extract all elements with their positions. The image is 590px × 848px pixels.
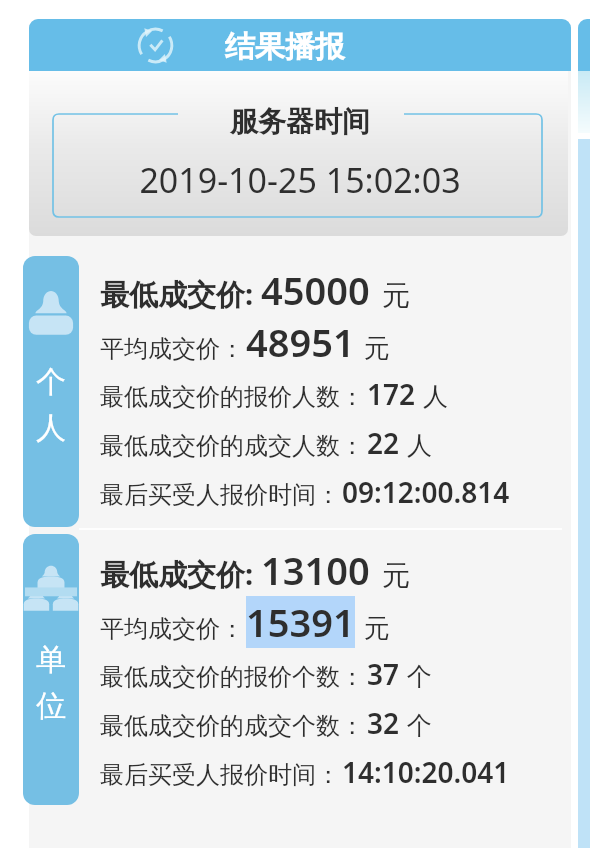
staticText: 人 <box>407 430 432 461</box>
staticText: 32 <box>367 704 400 742</box>
staticText: 元 <box>364 612 390 645</box>
other: Refresh <box>134 24 177 67</box>
staticText: 48951 <box>246 316 355 368</box>
staticText: 元 <box>382 558 410 593</box>
staticText: 14:10:20.041 <box>342 753 510 791</box>
staticText: 最低成交价的报价人数： <box>100 382 364 412</box>
staticText: 平均成交价： <box>100 334 244 364</box>
button[interactable]: 单 <box>23 534 79 805</box>
staticText: 最低成交价的报价个数： <box>100 662 364 692</box>
staticText: 人 <box>423 381 448 412</box>
staticText: 172 <box>367 375 416 413</box>
staticText: 结果播报 <box>225 28 345 66</box>
staticText: 平均成交价： <box>100 614 244 644</box>
staticText: 位 <box>36 687 66 725</box>
staticText: 最低成交价: <box>100 274 254 314</box>
staticText: 09:12:00.814 <box>342 473 510 511</box>
staticText: 37 <box>367 655 400 693</box>
staticText: 最低成交价的成交个数： <box>100 711 364 741</box>
staticText: 最低成交价的成交人数： <box>100 431 364 461</box>
staticText: 45000 <box>261 264 370 316</box>
staticText: 人 <box>36 409 66 447</box>
button[interactable]: 个 <box>23 256 79 527</box>
staticText: 15391 <box>246 596 355 648</box>
button[interactable]: Refresh <box>29 19 571 71</box>
staticText: 元 <box>364 332 390 365</box>
staticText: 最后买受人报价时间： <box>100 760 340 790</box>
staticText: 22 <box>367 424 400 462</box>
staticText: 个 <box>407 710 432 741</box>
staticText: 元 <box>382 278 410 313</box>
staticText: 最低成交价: <box>100 554 254 594</box>
staticText: 13100 <box>261 544 370 596</box>
staticText: 2019-10-25 15:02:03 <box>29 157 571 203</box>
staticText: 最后买受人报价时间： <box>100 480 340 510</box>
staticText: 个 <box>407 661 432 692</box>
staticText: 服务器时间 <box>29 104 571 139</box>
staticText: 个 <box>36 363 66 401</box>
staticText: 单 <box>36 641 66 679</box>
